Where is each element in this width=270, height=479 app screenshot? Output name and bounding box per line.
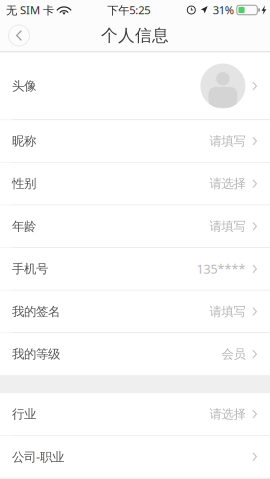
staticText: 135**** (196, 260, 245, 277)
staticText: 无 SIM 卡 (6, 2, 54, 18)
button[interactable]: 我的等级 (0, 333, 270, 375)
staticText: 性别 (12, 176, 36, 191)
staticText: 公司-职业 (12, 448, 64, 465)
staticText: 个人信息 (101, 25, 169, 46)
button[interactable]: 返回 (0, 20, 38, 51)
staticText: 年龄 (12, 218, 36, 234)
staticText: 请填写 (209, 304, 245, 319)
staticText: 行业 (12, 406, 36, 422)
staticText: 请选择 (209, 406, 245, 422)
staticText: 请填写 (209, 218, 245, 234)
staticText: 手机号 (12, 261, 48, 277)
button[interactable]: 头像 (0, 52, 270, 119)
button[interactable]: 性别 (0, 163, 270, 205)
button[interactable]: 手机号 (0, 248, 270, 290)
staticText: 31% (213, 2, 234, 18)
staticText: 昵称 (12, 133, 36, 149)
staticText: 下午5:25 (107, 2, 150, 18)
button[interactable]: 行业 (0, 393, 270, 435)
staticText: 我的等级 (12, 346, 60, 362)
staticText: 请填写 (209, 133, 245, 149)
staticText: 请选择 (209, 176, 245, 191)
button[interactable]: 年龄 (0, 205, 270, 247)
staticText: 头像 (12, 78, 36, 94)
staticText: 会员 (221, 346, 245, 362)
button[interactable]: 我的签名 (0, 290, 270, 332)
button[interactable]: 公司-职业 (0, 436, 270, 478)
staticText: 我的签名 (12, 304, 60, 319)
button[interactable]: 昵称 (0, 120, 270, 162)
